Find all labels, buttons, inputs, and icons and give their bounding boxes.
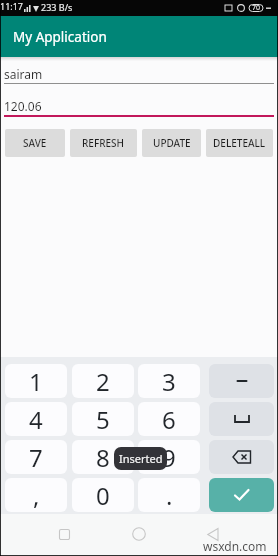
staticText: 8 [96, 441, 110, 474]
button[interactable]: 6 [138, 402, 200, 436]
staticText: 70 [252, 3, 261, 13]
staticText: UPDATE [153, 136, 191, 150]
button[interactable] [200, 521, 226, 547]
staticText: 233 B/s [41, 1, 73, 13]
staticText: 9 [162, 441, 176, 474]
button[interactable] [209, 364, 274, 398]
staticText: 4 [29, 403, 43, 436]
button[interactable]: UPDATE [142, 129, 201, 157]
button[interactable] [51, 521, 77, 547]
staticText: 3 [162, 365, 176, 398]
button[interactable]: 0 [72, 478, 134, 512]
button[interactable]: 5 [72, 402, 134, 436]
staticText: 120.06 [4, 98, 42, 114]
button[interactable] [209, 402, 274, 436]
staticText: REFRESH [82, 136, 125, 150]
button[interactable]: 7 [5, 440, 67, 474]
staticText: My Application [13, 28, 107, 46]
button[interactable]: 9 [138, 440, 200, 474]
button[interactable]: SAVE [5, 129, 65, 157]
button[interactable]: 8 [72, 440, 134, 474]
button[interactable]: . [138, 478, 200, 512]
button[interactable]: 1 [5, 364, 67, 398]
staticText: 11:17 [0, 0, 24, 12]
staticText: DELETEALL [213, 136, 266, 150]
button[interactable] [126, 521, 152, 547]
button[interactable] [209, 478, 274, 512]
button[interactable]: DELETEALL [206, 129, 273, 157]
button[interactable]: 3 [138, 364, 200, 398]
staticText: . [166, 479, 173, 512]
button[interactable]: sairam [4, 64, 274, 83]
staticText: sairam [4, 66, 43, 82]
staticText: 5 [96, 403, 110, 436]
button[interactable]: 4 [5, 402, 67, 436]
staticText: 0 [96, 479, 110, 512]
button[interactable]: , [5, 478, 67, 512]
button[interactable]: 2 [72, 364, 134, 398]
staticText: SAVE [23, 136, 47, 150]
staticText: 6 [162, 403, 176, 436]
button[interactable]: 120.06 [4, 96, 274, 115]
staticText: 2 [96, 365, 110, 398]
button[interactable]: My Application [0, 16, 278, 57]
staticText: , [33, 479, 40, 512]
staticText: Inserted [119, 451, 163, 466]
staticText: 1 [29, 365, 43, 398]
button[interactable] [209, 440, 274, 474]
staticText: 7 [29, 441, 43, 474]
button[interactable]: REFRESH [70, 129, 137, 157]
staticText: wsxdn.com [203, 538, 267, 554]
